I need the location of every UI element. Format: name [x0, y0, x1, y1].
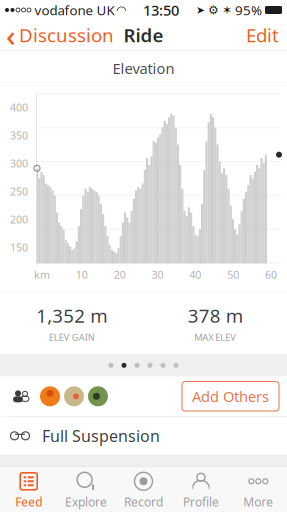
- staticText: Record: [124, 494, 163, 510]
- button[interactable]: Add Others: [0, 376, 287, 416]
- staticText: 50: [227, 267, 239, 282]
- staticText: Edit: [246, 23, 279, 47]
- staticText: ◠: [116, 3, 126, 17]
- button[interactable]: Full Suspension: [0, 417, 287, 455]
- button[interactable]: Record: [115, 467, 172, 512]
- staticText: 400: [10, 100, 28, 115]
- staticText: Full Suspension: [42, 425, 160, 446]
- staticText: km: [34, 267, 50, 282]
- staticText: 200: [10, 212, 28, 227]
- staticText: 150: [10, 240, 28, 255]
- staticText: Elevation: [112, 58, 174, 78]
- button[interactable]: Profile: [172, 467, 230, 512]
- staticText: 300: [10, 156, 28, 171]
- staticText: 30: [151, 267, 163, 282]
- button[interactable]: More: [230, 467, 287, 512]
- staticText: 350: [10, 128, 28, 143]
- staticText: 40: [189, 267, 201, 282]
- button[interactable]: Explore: [57, 467, 115, 512]
- staticText: 20: [114, 267, 126, 282]
- staticText: Discussion: [19, 23, 114, 47]
- button[interactable]: Edit: [246, 19, 287, 51]
- staticText: Ride: [123, 23, 163, 47]
- staticText: Profile: [183, 494, 219, 510]
- staticText: ✶: [222, 3, 232, 17]
- staticText: 250: [10, 184, 28, 199]
- staticText: vodafone UK: [34, 1, 114, 19]
- staticText: 13:50: [143, 0, 179, 20]
- staticText: Add Others: [192, 387, 269, 406]
- staticText: ELEV GAIN: [49, 331, 95, 343]
- button[interactable]: Feed: [0, 467, 57, 512]
- staticText: Feed: [15, 494, 42, 510]
- staticText: 10: [76, 267, 88, 282]
- staticText: 60: [265, 267, 277, 282]
- staticText: 95%: [235, 1, 262, 19]
- staticText: MAX ELEV: [194, 331, 236, 343]
- staticText: 378 m: [188, 303, 243, 328]
- staticText: Explore: [65, 494, 107, 510]
- staticText: More: [243, 494, 273, 510]
- staticText: ⚙: [208, 3, 219, 17]
- button[interactable]: ‹: [0, 11, 114, 58]
- staticText: ➤: [196, 4, 205, 16]
- staticText: 1,352 m: [36, 303, 107, 328]
- staticText: ‹: [6, 15, 16, 54]
